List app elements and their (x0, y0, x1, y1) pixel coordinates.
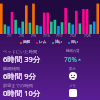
button[interactable]: 覚醒 (20, 40, 31, 45)
staticText: 7/21 (70, 34, 77, 38)
button[interactable]: 浅い (52, 40, 63, 45)
staticText: 就寝までの時間 (3, 83, 33, 88)
button[interactable]: Mood (69, 72, 77, 80)
staticText: 7/9 (31, 34, 36, 38)
button[interactable]: 76% (64, 55, 81, 64)
staticText: 6時間 9分 (3, 71, 37, 81)
staticText: 76% (64, 55, 77, 64)
button[interactable]: 就寝までの時間 (3, 83, 56, 98)
staticText: 睡眠時間 (3, 66, 20, 71)
staticText: 7/25 (84, 34, 91, 38)
button[interactable]: 睡眠時間 (3, 66, 56, 81)
button[interactable]: Memo (69, 89, 77, 97)
staticText: ベッドにいた時間 (3, 49, 38, 54)
staticText: 7/5 (19, 34, 24, 38)
staticText: 深い (71, 40, 79, 45)
staticText: 7/17 (56, 34, 63, 38)
staticText: 浅い (55, 40, 63, 45)
staticText: 0時間 10分 (3, 88, 41, 98)
button[interactable]: ベッドにいた時間 (3, 49, 56, 64)
button[interactable]: 深い (68, 40, 79, 45)
staticText: メモ (69, 84, 76, 88)
button[interactable]: レム (36, 40, 47, 45)
staticText: 6時間 39分 (3, 54, 41, 64)
staticText: 7/13 (43, 34, 50, 38)
staticText: レム (39, 40, 47, 45)
staticText: 7/1 (7, 34, 12, 38)
staticText: 覚醒 (23, 40, 31, 45)
staticText: 気分 (69, 67, 76, 71)
staticText: 睡眠の質 (66, 49, 80, 53)
